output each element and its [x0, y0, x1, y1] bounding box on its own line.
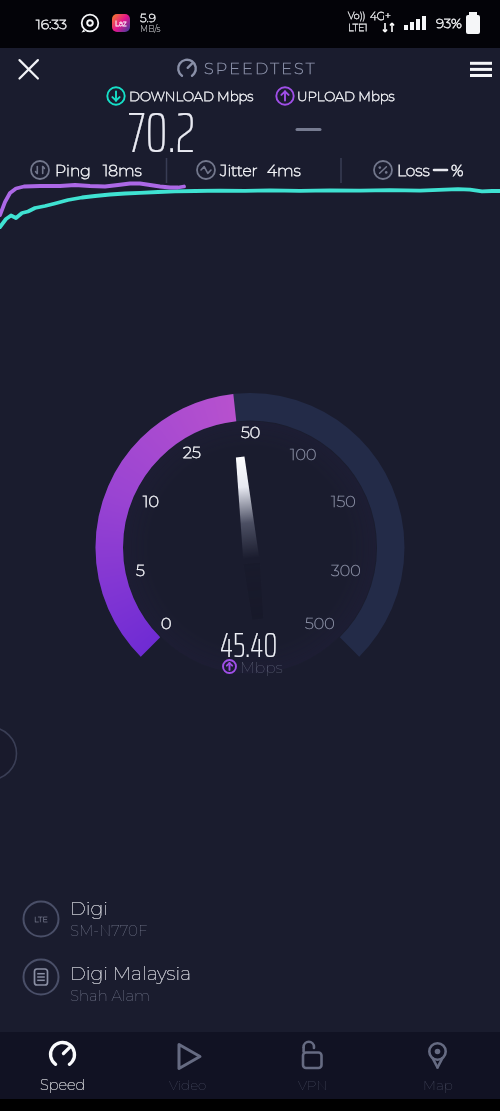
staticText: MB/s — [140, 24, 161, 34]
staticText: Shah Alam — [70, 986, 151, 1004]
button[interactable] — [375, 1032, 500, 1099]
staticText: Speed — [40, 1076, 86, 1094]
staticText: 45.40 — [220, 618, 278, 672]
staticText: Digi Malaysia — [70, 962, 192, 985]
staticText: 0 — [161, 614, 172, 634]
staticText: LTE1 — [348, 22, 368, 34]
staticText: 25 — [183, 443, 201, 463]
staticText: SPEEDTEST — [204, 59, 317, 79]
staticText: 18ms — [103, 161, 142, 180]
staticText: 70.2 — [128, 90, 195, 170]
staticText: DOWNLOAD Mbps — [129, 88, 254, 104]
staticText: 4ms — [267, 161, 301, 180]
staticText: 100 — [290, 445, 317, 465]
staticText: 16:33 — [36, 15, 67, 32]
staticText: % — [451, 161, 464, 180]
staticText: 93% — [436, 15, 462, 31]
staticText: Loss — [397, 161, 430, 180]
staticText: UPLOAD Mbps — [297, 88, 395, 104]
staticText: Video — [169, 1077, 207, 1093]
staticText: 4G+ — [370, 10, 391, 23]
staticText: Ping — [55, 161, 91, 180]
button[interactable] — [16, 894, 336, 944]
staticText: Map — [423, 1077, 453, 1093]
button[interactable] — [16, 952, 336, 1004]
staticText: 500 — [305, 614, 335, 634]
staticText: VPN — [298, 1077, 328, 1093]
staticText: Laz — [115, 19, 127, 28]
staticText: Digi — [70, 897, 109, 920]
button[interactable] — [10, 51, 48, 88]
staticText: SM-N770F — [70, 921, 148, 939]
staticText: Vo)) — [348, 10, 366, 22]
button[interactable] — [0, 1032, 125, 1099]
staticText: 150 — [331, 492, 356, 512]
staticText: Jitter — [220, 161, 258, 180]
staticText: 10 — [143, 492, 159, 512]
staticText: 5.9 — [140, 10, 156, 25]
staticText: Mbps — [240, 658, 283, 677]
staticText: 50 — [241, 423, 261, 443]
button[interactable] — [458, 52, 500, 88]
staticText: 5 — [136, 561, 145, 581]
staticText: 300 — [331, 561, 361, 581]
button[interactable] — [125, 1032, 250, 1099]
button[interactable] — [250, 1032, 375, 1099]
staticText: LTE — [34, 914, 48, 924]
